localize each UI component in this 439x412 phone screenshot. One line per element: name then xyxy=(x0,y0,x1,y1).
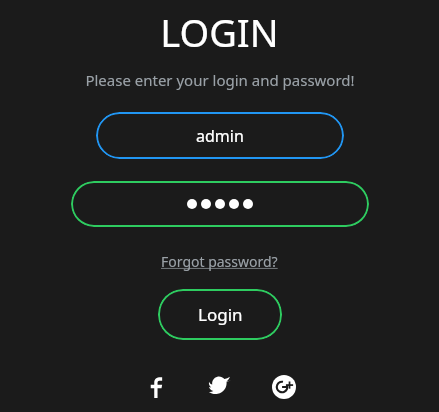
button[interactable] xyxy=(71,181,369,227)
staticText: LOGIN xyxy=(160,6,279,58)
staticText: Forgot password? xyxy=(161,252,278,271)
button[interactable]: admin xyxy=(96,112,344,159)
button[interactable]: Login xyxy=(158,289,282,340)
button[interactable]: Sign in with Twitter xyxy=(202,369,238,405)
button[interactable]: Sign in with Google Plus xyxy=(266,369,302,405)
staticText: Please enter your login and password! xyxy=(85,70,355,90)
button[interactable]: Sign in with Facebook xyxy=(138,369,174,405)
button[interactable]: Forgot password? xyxy=(157,250,282,273)
staticText: Login xyxy=(198,303,243,326)
staticText: admin xyxy=(196,125,244,147)
